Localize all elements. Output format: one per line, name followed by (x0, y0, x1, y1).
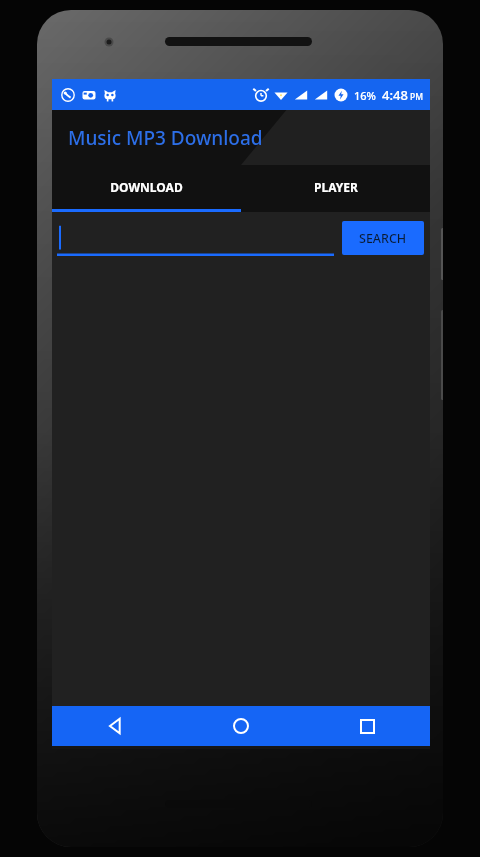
staticText: SEARCH (359, 230, 407, 247)
button[interactable]: Home (178, 706, 304, 746)
button[interactable]: Recent apps (304, 706, 430, 746)
button[interactable]: Back (52, 706, 178, 746)
button[interactable]: DOWNLOAD (52, 165, 241, 209)
staticText: DOWNLOAD (110, 179, 183, 195)
staticText: Music MP3 Download (68, 125, 263, 151)
button[interactable]: SEARCH (342, 221, 424, 255)
staticText: PM (410, 91, 423, 103)
staticText: 4:48 (382, 86, 408, 104)
staticText: 16% (354, 88, 376, 103)
button[interactable] (57, 220, 334, 256)
button[interactable]: PLAYER (241, 165, 430, 209)
staticText: PLAYER (314, 179, 358, 195)
